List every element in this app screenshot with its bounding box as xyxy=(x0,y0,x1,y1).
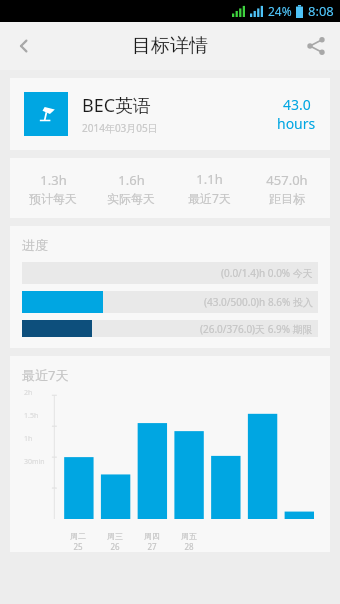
staticText: 26 xyxy=(110,541,120,552)
button[interactable]: Back xyxy=(0,22,48,70)
staticText: 2014年03月05日 xyxy=(82,121,158,135)
staticText: (0.0/1.4)h 0.0% 今天 xyxy=(221,266,313,280)
staticText: 周二 xyxy=(70,531,86,541)
staticText: 1.1h xyxy=(196,170,223,188)
button[interactable]: (26.0/376.0)天 6.9% 期限 xyxy=(22,320,318,337)
button[interactable]: (0.0/1.4)h 0.0% 今天 xyxy=(22,262,318,284)
staticText: 进度 xyxy=(22,237,48,253)
staticText: 43.0 xyxy=(283,95,311,114)
staticText: 24% xyxy=(268,3,292,19)
staticText: 457.0h xyxy=(266,171,308,189)
staticText: 30min xyxy=(24,457,45,467)
staticText: 25 xyxy=(73,541,83,552)
button[interactable]: 进度 xyxy=(10,226,330,348)
button[interactable]: Share xyxy=(292,22,340,70)
staticText: 周五 xyxy=(181,531,197,541)
staticText: BEC英语 xyxy=(82,93,152,118)
staticText: 距目标 xyxy=(269,191,305,206)
staticText: 1.5h xyxy=(24,411,39,421)
staticText: (26.0/376.0)天 6.9% 期限 xyxy=(200,322,313,336)
staticText: 周四 xyxy=(144,531,160,541)
staticText: 1.3h xyxy=(40,171,67,189)
staticText: 目标详情 xyxy=(132,34,208,58)
button[interactable]: (43.0/500.0)h 8.6% 投入 xyxy=(22,291,318,313)
staticText: 1h xyxy=(24,434,33,444)
staticText: 1.6h xyxy=(118,171,145,189)
staticText: 最近7天 xyxy=(188,190,231,206)
staticText: 8:08 xyxy=(308,2,334,20)
staticText: 预计每天 xyxy=(29,191,77,206)
button[interactable]: 最近7天 xyxy=(10,356,330,552)
button[interactable]: BEC英语 xyxy=(10,78,330,150)
staticText: hours xyxy=(277,114,316,133)
button[interactable]: 1.3h xyxy=(10,158,330,218)
staticText: 28 xyxy=(184,541,194,552)
staticText: 实际每天 xyxy=(107,191,155,206)
staticText: 27 xyxy=(147,541,157,552)
staticText: 周三 xyxy=(107,531,123,541)
staticText: (43.0/500.0)h 8.6% 投入 xyxy=(204,295,313,309)
staticText: 2h xyxy=(24,388,33,398)
staticText: 最近7天 xyxy=(22,366,69,384)
